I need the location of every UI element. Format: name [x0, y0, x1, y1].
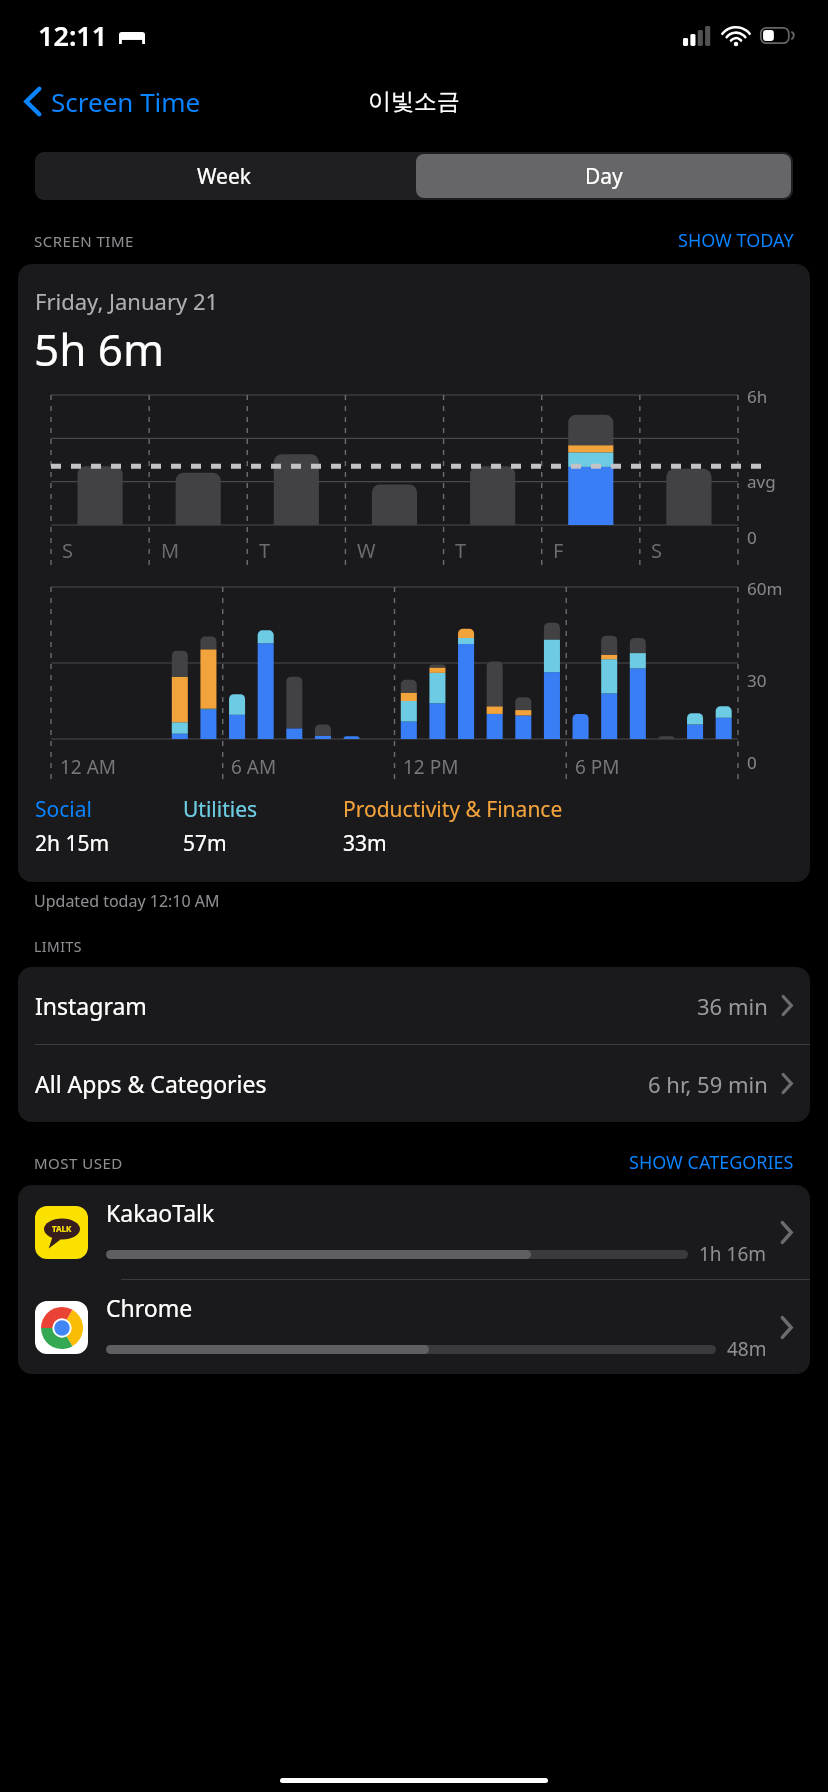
staticText: Week [197, 162, 252, 191]
staticText: 6 AM [231, 754, 277, 780]
staticText: SCREEN TIME [34, 231, 134, 251]
button[interactable]: All Apps & Categories [18, 1045, 810, 1122]
button[interactable]: Instagram [18, 967, 810, 1044]
staticText: 60m [747, 577, 783, 600]
staticText: T [455, 537, 467, 564]
staticText: avg [747, 470, 776, 493]
staticText: Chrome [106, 1292, 193, 1323]
button[interactable]: Screen Time [16, 76, 209, 127]
staticText: 2h 15m [35, 829, 110, 858]
staticText: KakaoTalk [106, 1197, 215, 1228]
staticText: 12 AM [60, 754, 117, 780]
staticText: LIMITS [34, 937, 82, 956]
staticText: 6 PM [575, 754, 620, 780]
staticText: TALK [52, 1223, 72, 1234]
staticText: Productivity & Finance [343, 795, 563, 824]
staticText: Social [35, 795, 92, 824]
staticText: 6h [747, 385, 768, 408]
staticText: All Apps & Categories [35, 1068, 267, 1099]
staticText: Friday, January 21 [35, 286, 219, 316]
button[interactable]: Chrome [18, 1280, 810, 1374]
button[interactable]: Utilities [183, 795, 343, 858]
staticText: 5h 6m [34, 319, 165, 379]
button[interactable]: Day [416, 154, 791, 198]
staticText: F [553, 537, 564, 564]
staticText: Instagram [35, 990, 147, 1021]
staticText: 33m [343, 829, 387, 858]
button[interactable]: Social [35, 795, 183, 858]
staticText: SHOW CATEGORIES [629, 1150, 794, 1175]
staticText: W [357, 537, 376, 564]
staticText: S [651, 537, 662, 564]
staticText: T [259, 537, 271, 564]
staticText: Screen Time [51, 84, 201, 119]
staticText: 6 hr, 59 min [648, 1069, 768, 1099]
staticText: 57m [183, 829, 227, 858]
button[interactable]: Productivity & Finance [343, 795, 800, 858]
staticText: MOST USED [34, 1153, 123, 1173]
staticText: Utilities [183, 795, 258, 824]
staticText: M [161, 537, 180, 564]
staticText: 이빛소금 [368, 87, 460, 116]
button[interactable]: SHOW TODAY [678, 228, 794, 253]
button[interactable]: Week [35, 152, 414, 200]
staticText: S [62, 537, 73, 564]
staticText: 12:11 [38, 17, 108, 54]
staticText: 48m [727, 1336, 767, 1362]
staticText: 0 [747, 751, 757, 774]
staticText: 36 min [697, 991, 768, 1021]
staticText: 0 [747, 526, 757, 549]
button[interactable]: SHOW CATEGORIES [629, 1150, 794, 1175]
staticText: 30 [747, 669, 767, 692]
staticText: SHOW TODAY [678, 228, 794, 253]
button[interactable]: TALK [18, 1185, 810, 1279]
staticText: 12 PM [403, 754, 459, 780]
staticText: 1h 16m [699, 1241, 767, 1267]
staticText: Updated today 12:10 AM [34, 890, 220, 912]
staticText: Day [585, 162, 623, 191]
